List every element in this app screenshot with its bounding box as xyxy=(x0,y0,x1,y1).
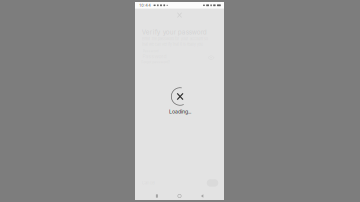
staticText: 10:44 xyxy=(139,3,151,8)
staticText: Loading... xyxy=(169,108,191,115)
button[interactable]: Recent apps xyxy=(153,192,161,200)
button[interactable]: Close xyxy=(174,9,185,21)
button[interactable]: Home xyxy=(176,192,183,200)
staticText: Verify your password xyxy=(142,28,207,36)
button[interactable]: Back xyxy=(198,192,206,200)
